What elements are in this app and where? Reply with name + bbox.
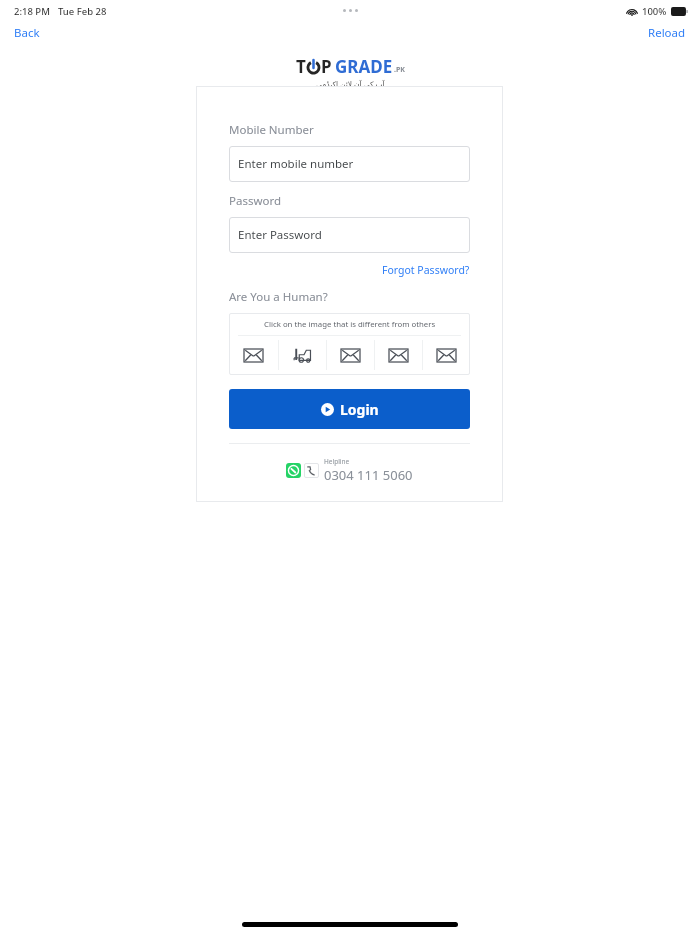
button[interactable]: Envelope image bbox=[229, 336, 278, 374]
staticText: Click on the image that is different fro… bbox=[264, 319, 436, 330]
button[interactable]: Reload bbox=[634, 22, 700, 44]
button[interactable]: Enter mobile number bbox=[229, 146, 470, 182]
button[interactable]: Call helpline bbox=[304, 463, 319, 478]
button[interactable]: Forklift image bbox=[278, 336, 326, 374]
button[interactable]: Enter Password bbox=[229, 217, 470, 253]
staticText: Tue Feb 28 bbox=[58, 5, 107, 18]
staticText: Mobile Number bbox=[229, 122, 314, 138]
staticText: Are You a Human? bbox=[229, 289, 328, 305]
staticText: 100% bbox=[642, 5, 667, 18]
staticText: Reload bbox=[648, 25, 686, 41]
staticText: .PK bbox=[394, 65, 405, 75]
staticText: Login bbox=[340, 400, 379, 419]
button[interactable]: Envelope image bbox=[374, 336, 422, 374]
staticText: Back bbox=[14, 25, 40, 41]
button[interactable]: Back bbox=[0, 22, 54, 44]
staticText: Enter mobile number bbox=[238, 156, 354, 172]
button[interactable]: Envelope image bbox=[326, 336, 374, 374]
button[interactable]: Login bbox=[229, 389, 470, 429]
staticText: Helpline bbox=[324, 457, 350, 466]
button[interactable]: Envelope image bbox=[422, 336, 470, 374]
staticText: Enter Password bbox=[238, 227, 322, 243]
button[interactable]: Forgot Password? bbox=[382, 261, 470, 279]
staticText: 0304 111 5060 bbox=[324, 466, 413, 484]
staticText: 2:18 PM bbox=[14, 5, 50, 18]
button[interactable]: WhatsApp bbox=[286, 463, 301, 478]
staticText: آپ کی آن لائن اکیڈمی bbox=[316, 79, 385, 89]
staticText: T bbox=[296, 55, 306, 78]
staticText: Forgot Password? bbox=[382, 263, 470, 277]
staticText: GRADE bbox=[335, 55, 393, 78]
staticText: Password bbox=[229, 193, 282, 209]
staticText: P bbox=[321, 55, 332, 78]
